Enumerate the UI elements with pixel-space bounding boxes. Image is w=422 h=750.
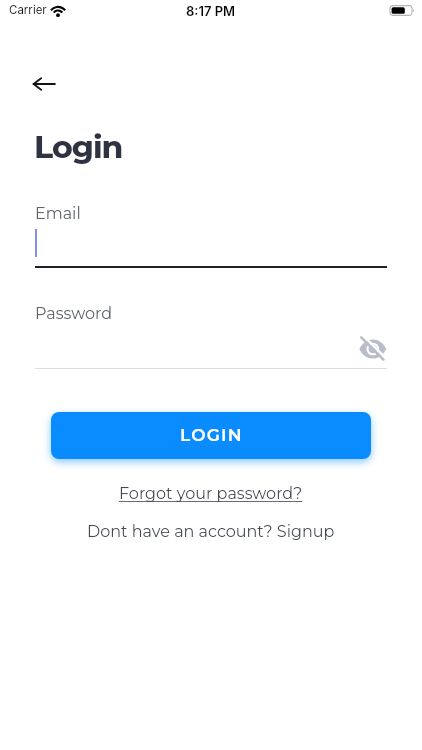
button[interactable] bbox=[27, 70, 61, 98]
button[interactable] bbox=[352, 328, 394, 370]
button[interactable]: Email bbox=[35, 200, 387, 268]
staticText: Login bbox=[34, 128, 123, 166]
button[interactable]: LOGIN bbox=[51, 412, 371, 459]
staticText: Carrier bbox=[9, 3, 47, 17]
staticText: Email bbox=[35, 204, 81, 224]
staticText: LOGIN bbox=[180, 425, 243, 446]
button[interactable]: Forgot your password? bbox=[119, 484, 303, 504]
button[interactable]: Password bbox=[35, 300, 387, 369]
staticText: Password bbox=[35, 304, 113, 324]
staticText: 8:17 PM bbox=[186, 3, 236, 19]
button[interactable]: Dont have an account? Signup bbox=[87, 522, 335, 542]
